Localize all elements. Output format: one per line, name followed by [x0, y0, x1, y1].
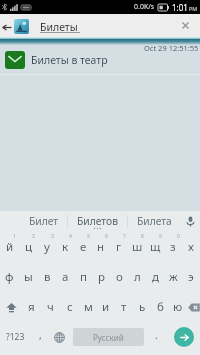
- button[interactable]: ч: [41, 292, 60, 322]
- button[interactable]: Билета: [128, 211, 181, 232]
- staticText: з: [170, 239, 176, 255]
- button[interactable]: .: [144, 322, 168, 352]
- staticText: 6: [105, 233, 108, 240]
- button[interactable]: ы: [19, 262, 38, 292]
- button[interactable]: ц: [19, 232, 38, 262]
- button[interactable]: ф: [0, 262, 19, 292]
- button[interactable]: ш: [128, 232, 146, 262]
- staticText: Oct 29 12:51:55: [144, 43, 199, 53]
- staticText: и: [102, 299, 110, 315]
- button[interactable]: т: [115, 292, 133, 322]
- staticText: 2: [32, 233, 35, 240]
- button[interactable]: з: [164, 232, 182, 262]
- staticText: у: [44, 239, 50, 255]
- button[interactable]: Билеты в театр: [0, 45, 200, 74]
- button[interactable]: Билетов: [68, 211, 127, 232]
- staticText: Билеты в театр: [31, 53, 108, 67]
- button[interactable]: Shift: [0, 292, 22, 322]
- button[interactable]: л: [128, 262, 146, 292]
- staticText: 0.0K/s: [134, 2, 155, 12]
- staticText: Билеты: [40, 20, 78, 34]
- button[interactable]: д: [146, 262, 164, 292]
- staticText: Билет: [29, 214, 59, 228]
- staticText: ч: [47, 299, 54, 315]
- staticText: ю: [173, 299, 183, 315]
- staticText: ь: [139, 299, 146, 315]
- staticText: й: [6, 239, 14, 255]
- staticText: Билета: [137, 214, 172, 228]
- staticText: н: [97, 239, 105, 255]
- staticText: м: [84, 299, 93, 315]
- button[interactable]: Clear text: [174, 14, 196, 37]
- staticText: 3: [51, 233, 54, 240]
- staticText: х: [188, 239, 194, 255]
- button[interactable]: ь: [133, 292, 151, 322]
- staticText: с: [67, 299, 73, 315]
- button[interactable]: ,: [31, 322, 49, 352]
- staticText: ,: [39, 328, 42, 342]
- staticText: к: [62, 239, 69, 255]
- staticText: ш: [132, 239, 143, 255]
- button[interactable]: щ: [146, 232, 164, 262]
- staticText: 1:01: [172, 2, 188, 13]
- button[interactable]: в: [38, 262, 56, 292]
- staticText: 4: [69, 233, 72, 240]
- staticText: .: [155, 328, 158, 342]
- staticText: ы: [24, 269, 33, 285]
- staticText: р: [98, 269, 105, 285]
- button[interactable]: Change language: [49, 322, 70, 352]
- button[interactable]: ю: [169, 292, 187, 322]
- staticText: я: [28, 299, 35, 315]
- button[interactable]: Backspace: [187, 292, 200, 322]
- staticText: ф: [5, 269, 14, 285]
- staticText: 1: [13, 233, 16, 240]
- staticText: Русский: [93, 332, 124, 343]
- button[interactable]: Русский: [73, 328, 144, 346]
- staticText: 8: [141, 233, 144, 240]
- button[interactable]: о: [110, 262, 128, 292]
- button[interactable]: п: [74, 262, 92, 292]
- staticText: Билетов: [77, 214, 118, 228]
- staticText: г: [116, 239, 122, 255]
- button[interactable]: е: [74, 232, 92, 262]
- staticText: 0: [177, 233, 180, 240]
- button[interactable]: к: [56, 232, 74, 262]
- button[interactable]: Search: [174, 327, 194, 347]
- button[interactable]: я: [22, 292, 41, 322]
- button[interactable]: г: [110, 232, 128, 262]
- button[interactable]: ?123: [0, 322, 31, 352]
- button[interactable]: м: [79, 292, 97, 322]
- staticText: л: [134, 269, 141, 285]
- button[interactable]: и: [97, 292, 115, 322]
- staticText: 5: [87, 233, 90, 240]
- staticText: п: [80, 269, 87, 285]
- staticText: д: [152, 269, 159, 285]
- button[interactable]: ж: [164, 262, 182, 292]
- button[interactable]: х: [182, 232, 200, 262]
- staticText: а: [62, 269, 69, 285]
- staticText: е: [80, 239, 87, 255]
- staticText: ц: [25, 239, 33, 255]
- staticText: 7: [123, 233, 126, 240]
- button[interactable]: у: [38, 232, 56, 262]
- button[interactable]: э: [182, 262, 200, 292]
- staticText: щ: [150, 239, 161, 255]
- staticText: ж: [169, 269, 178, 285]
- staticText: б: [157, 299, 164, 315]
- staticText: в: [44, 269, 51, 285]
- staticText: т: [121, 299, 127, 315]
- button[interactable]: а: [56, 262, 74, 292]
- button[interactable]: б: [151, 292, 169, 322]
- button[interactable]: й: [0, 232, 19, 262]
- button[interactable]: н: [92, 232, 110, 262]
- staticText: 9: [159, 233, 162, 240]
- staticText: о: [116, 269, 123, 285]
- button[interactable]: Back: [0, 14, 14, 37]
- button[interactable]: с: [60, 292, 79, 322]
- staticText: ?123: [6, 331, 25, 343]
- button[interactable]: р: [92, 262, 110, 292]
- button[interactable]: Voice input: [181, 211, 200, 232]
- staticText: PM: [189, 5, 198, 12]
- staticText: э: [188, 269, 194, 285]
- button[interactable]: Билет: [21, 211, 67, 232]
